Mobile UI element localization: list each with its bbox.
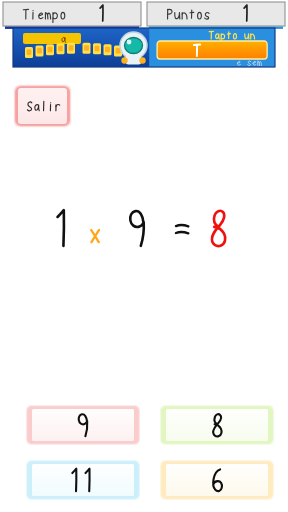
- button[interactable]: [26, 460, 140, 500]
- button[interactable]: [160, 405, 274, 445]
- button[interactable]: [13, 84, 72, 128]
- button[interactable]: [147, 2, 285, 31]
- button[interactable]: [26, 405, 140, 445]
- button[interactable]: [3, 2, 141, 31]
- button[interactable]: Advertisement: Juega a Crazy Spacy - Ent…: [13, 28, 275, 67]
- button[interactable]: [160, 460, 274, 500]
